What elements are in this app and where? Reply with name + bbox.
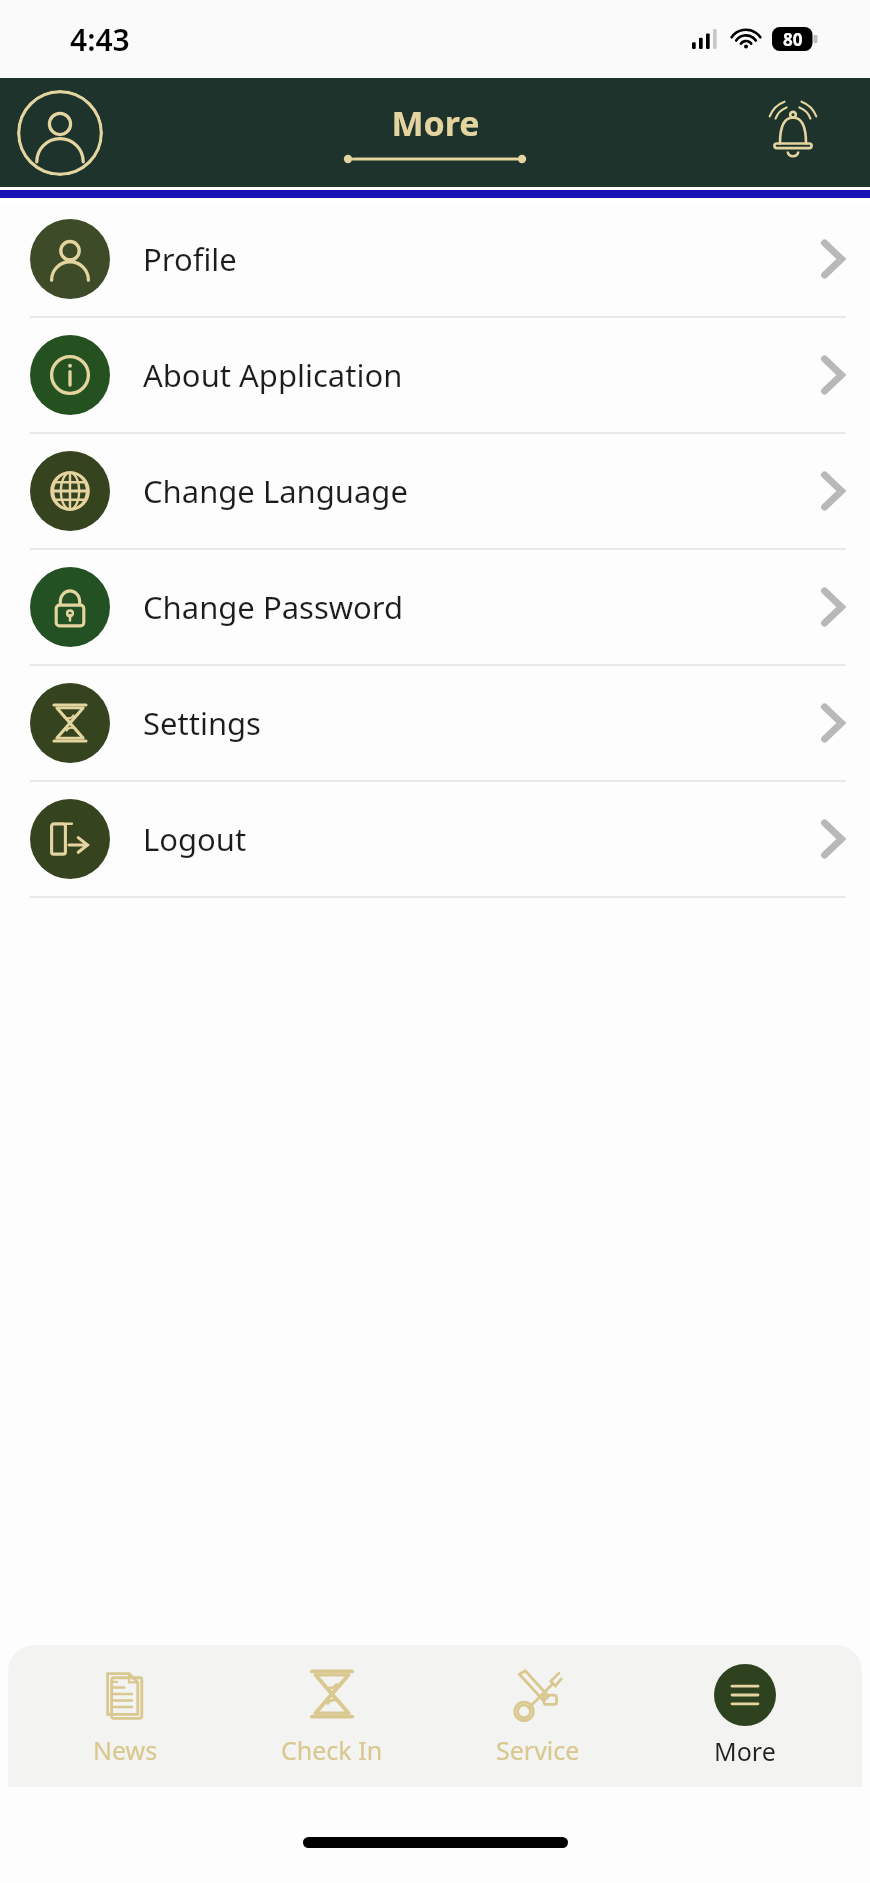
staticText: Settings bbox=[143, 702, 261, 744]
button[interactable]: More bbox=[655, 1658, 835, 1774]
staticText: About Application bbox=[143, 354, 403, 396]
button[interactable]: Service bbox=[448, 1659, 628, 1773]
button[interactable]: About Application bbox=[0, 318, 870, 432]
staticText: 4:43 bbox=[70, 19, 130, 60]
staticText: News bbox=[93, 1733, 158, 1767]
button[interactable]: Change Password bbox=[0, 550, 870, 664]
button[interactable]: Logout bbox=[0, 782, 870, 896]
button[interactable]: Profile bbox=[0, 202, 870, 316]
button[interactable]: Profile bbox=[17, 90, 103, 176]
staticText: More bbox=[714, 1734, 776, 1768]
staticText: Logout bbox=[143, 818, 247, 860]
staticText: Service bbox=[496, 1733, 580, 1767]
button[interactable]: News bbox=[35, 1659, 215, 1773]
button[interactable]: Settings bbox=[0, 666, 870, 780]
button[interactable]: Check In bbox=[242, 1659, 422, 1773]
staticText: More bbox=[391, 100, 480, 146]
staticText: Change Language bbox=[143, 470, 408, 512]
staticText: 80 bbox=[783, 28, 803, 51]
staticText: Change Password bbox=[143, 586, 404, 628]
staticText: Profile bbox=[143, 238, 237, 280]
button[interactable]: Change Language bbox=[0, 434, 870, 548]
staticText: Check In bbox=[281, 1733, 383, 1767]
button[interactable]: Notifications bbox=[756, 96, 830, 170]
